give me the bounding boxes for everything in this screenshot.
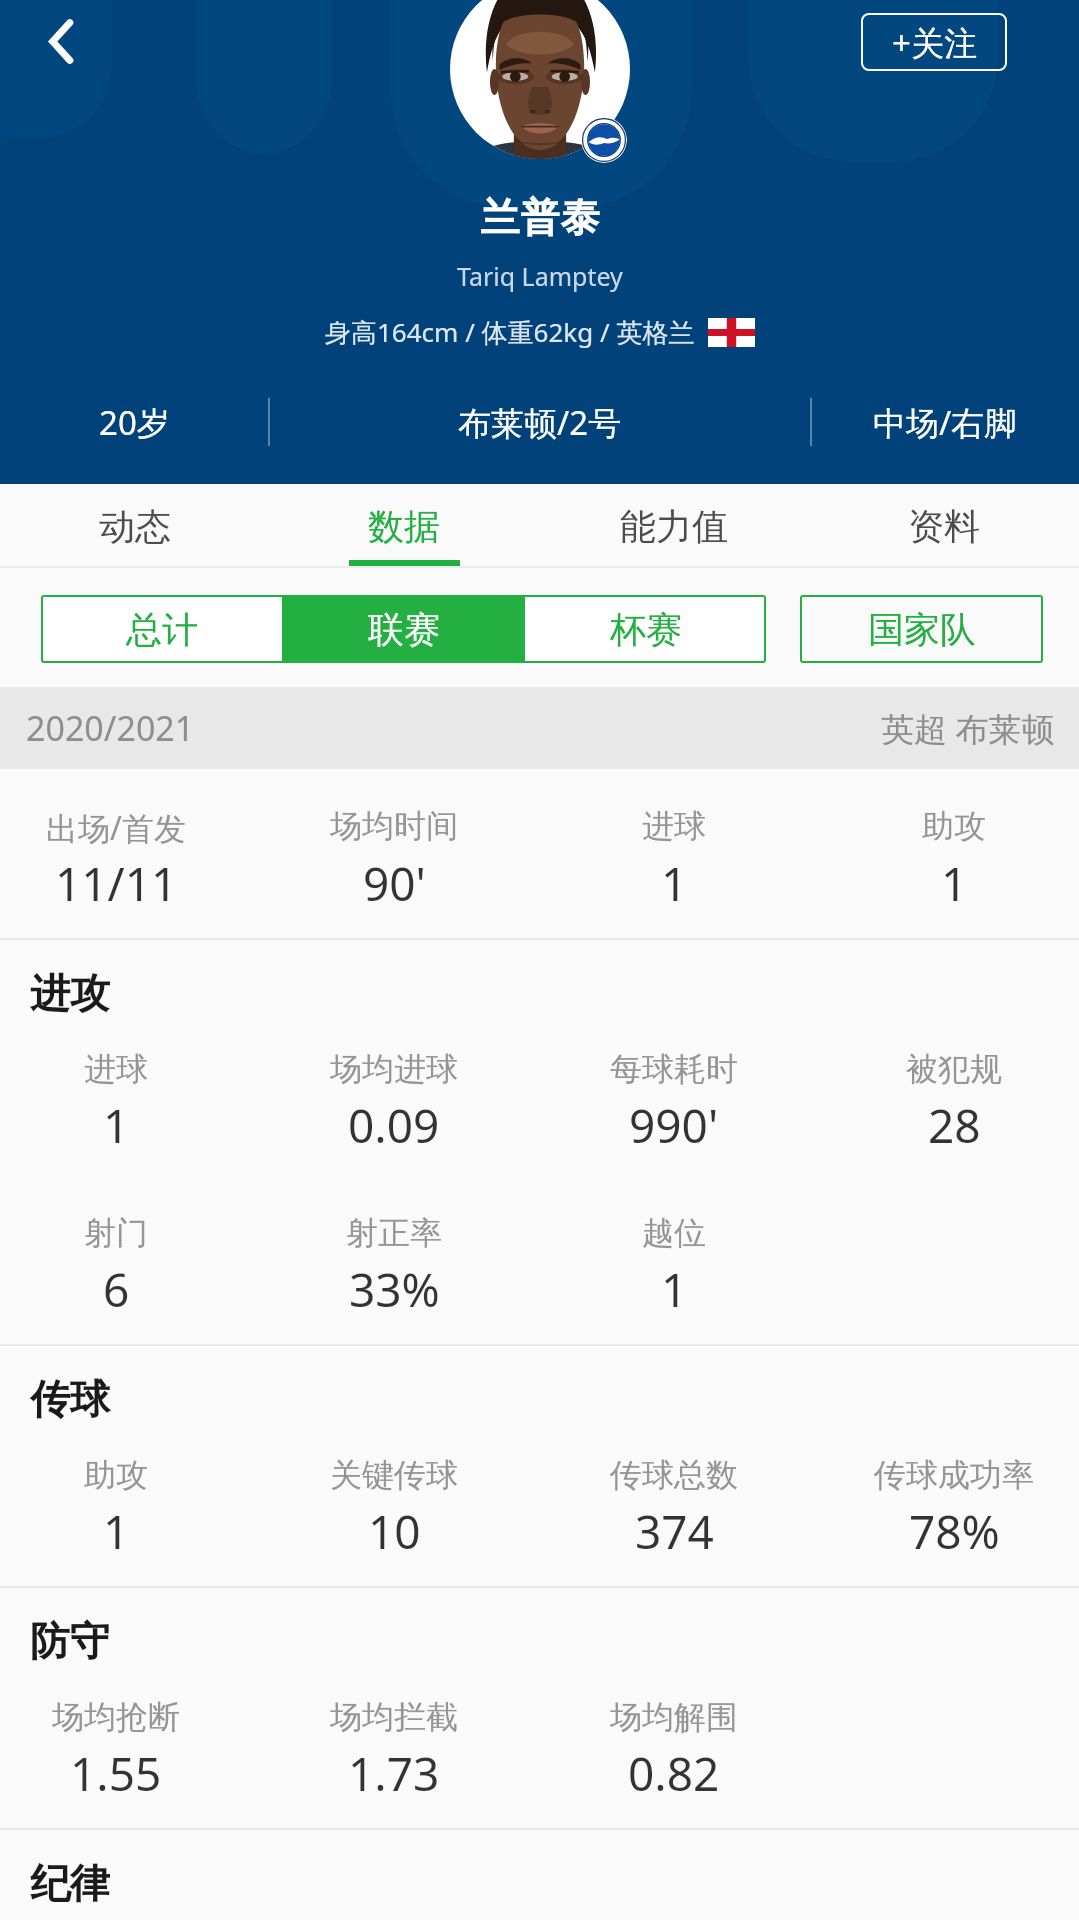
staticText: 出场/首发 — [46, 806, 186, 850]
staticText: 总计 — [126, 607, 198, 652]
staticText: 传球 — [30, 1374, 110, 1424]
staticText: 0.09 — [348, 1094, 440, 1157]
staticText: 英超 布莱顿 — [881, 706, 1055, 751]
staticText: 每球耗时 — [610, 1049, 738, 1089]
staticText: 进球 — [642, 806, 706, 846]
staticText: 助攻 — [84, 1455, 148, 1495]
staticText: 场均时间 — [330, 806, 458, 846]
staticText: 90' — [363, 852, 426, 915]
staticText: 传球总数 — [610, 1455, 738, 1495]
staticText: 联赛 — [368, 607, 440, 652]
staticText: 1.73 — [348, 1742, 440, 1805]
button[interactable]: 杯赛 — [525, 595, 766, 663]
staticText: +关注 — [892, 20, 977, 65]
staticText: 2020/2021 — [26, 705, 195, 751]
staticText: 布莱顿/2号 — [458, 400, 622, 445]
staticText: 6 — [103, 1258, 130, 1321]
staticText: 杯赛 — [610, 607, 682, 652]
staticText: 纪律 — [30, 1858, 110, 1908]
staticText: 数据 — [368, 504, 440, 549]
staticText: 进球 — [84, 1049, 148, 1089]
staticText: 20岁 — [99, 400, 170, 445]
button[interactable]: +关注 — [861, 13, 1007, 71]
staticText: 0.82 — [628, 1742, 720, 1805]
button[interactable]: 动态 — [0, 484, 269, 566]
button[interactable]: 联赛 — [284, 595, 523, 663]
staticText: 进攻 — [30, 968, 110, 1018]
staticText: 28 — [928, 1094, 981, 1157]
staticText: 1 — [941, 852, 968, 915]
button[interactable]: 国家队 — [800, 595, 1043, 663]
staticText: 射正率 — [346, 1213, 442, 1253]
button[interactable]: Player photo — [450, 0, 630, 159]
staticText: 374 — [635, 1500, 714, 1563]
staticText: 1 — [103, 1500, 130, 1563]
button[interactable]: 数据 — [269, 484, 539, 566]
staticText: 中场/右脚 — [873, 400, 1018, 445]
staticText: 国家队 — [868, 607, 976, 652]
staticText: 兰普泰 — [480, 193, 600, 242]
staticText: 1 — [661, 1258, 688, 1321]
staticText: 1 — [103, 1094, 130, 1157]
staticText: 助攻 — [922, 806, 986, 846]
staticText: 能力值 — [620, 504, 728, 549]
button[interactable]: 资料 — [809, 484, 1079, 566]
staticText: 1.55 — [70, 1742, 162, 1805]
staticText: 被犯规 — [906, 1049, 1002, 1089]
staticText: 资料 — [908, 504, 980, 549]
staticText: 10 — [368, 1500, 421, 1563]
staticText: 场均进球 — [330, 1049, 458, 1089]
staticText: 身高164cm / 体重62kg / 英格兰 — [325, 314, 695, 350]
button[interactable]: 能力值 — [539, 484, 809, 566]
staticText: 1 — [661, 852, 688, 915]
button[interactable]: Back — [20, 0, 102, 82]
staticText: 关键传球 — [330, 1455, 458, 1495]
staticText: 11/11 — [55, 852, 178, 915]
button[interactable]: 2020/2021 — [0, 687, 1079, 769]
staticText: 防守 — [30, 1616, 110, 1666]
staticText: 33% — [349, 1258, 440, 1321]
staticText: 传球成功率 — [874, 1455, 1034, 1495]
staticText: 射门 — [84, 1213, 148, 1253]
staticText: 场均拦截 — [330, 1697, 458, 1737]
staticText: 场均抢断 — [52, 1697, 180, 1737]
staticText: Tariq Lamptey — [457, 259, 623, 293]
staticText: 越位 — [642, 1213, 706, 1253]
staticText: 990' — [629, 1094, 719, 1157]
staticText: 78% — [909, 1500, 1000, 1563]
staticText: 场均解围 — [610, 1697, 738, 1737]
staticText: 动态 — [99, 504, 171, 549]
button[interactable]: 总计 — [41, 595, 282, 663]
